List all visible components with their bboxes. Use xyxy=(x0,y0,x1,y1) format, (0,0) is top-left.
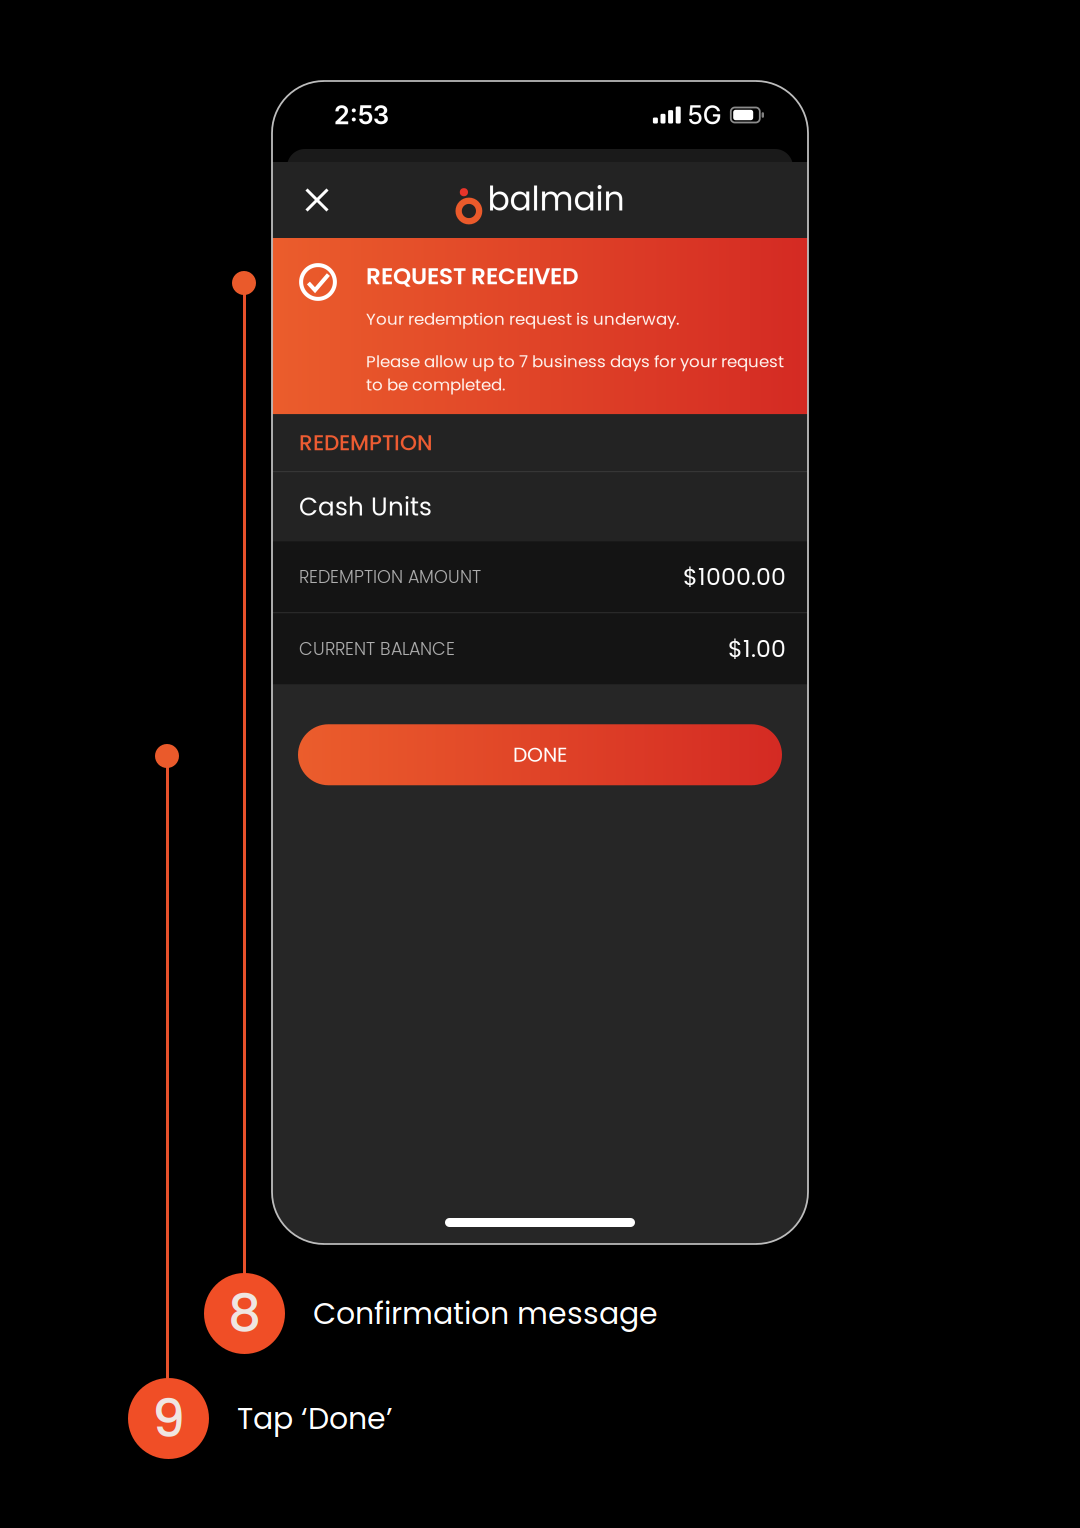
button[interactable]: Close xyxy=(288,171,346,229)
staticText: $1.00 xyxy=(728,632,786,665)
staticText: DONE xyxy=(513,741,567,769)
staticText: 9 xyxy=(152,1382,185,1455)
staticText: Your redemption request is underway. xyxy=(366,307,679,331)
staticText: REQUEST RECEIVED xyxy=(366,260,579,292)
staticText: REDEMPTION xyxy=(299,428,433,458)
button[interactable]: DONE xyxy=(298,724,782,785)
staticText: 8 xyxy=(228,1277,261,1350)
staticText: REDEMPTION AMOUNT xyxy=(299,564,481,589)
staticText: CURRENT BALANCE xyxy=(299,636,455,661)
staticText: Please allow up to 7 business days for y… xyxy=(366,350,784,396)
staticText: Confirmation message xyxy=(313,1292,658,1334)
staticText: Cash Units xyxy=(299,489,432,524)
staticText: 2:53 xyxy=(334,100,389,130)
staticText: 5G xyxy=(688,100,722,130)
staticText: Tap ‘Done’ xyxy=(237,1397,393,1439)
staticText: balmain xyxy=(487,176,624,222)
staticText: $1000.00 xyxy=(683,560,786,593)
